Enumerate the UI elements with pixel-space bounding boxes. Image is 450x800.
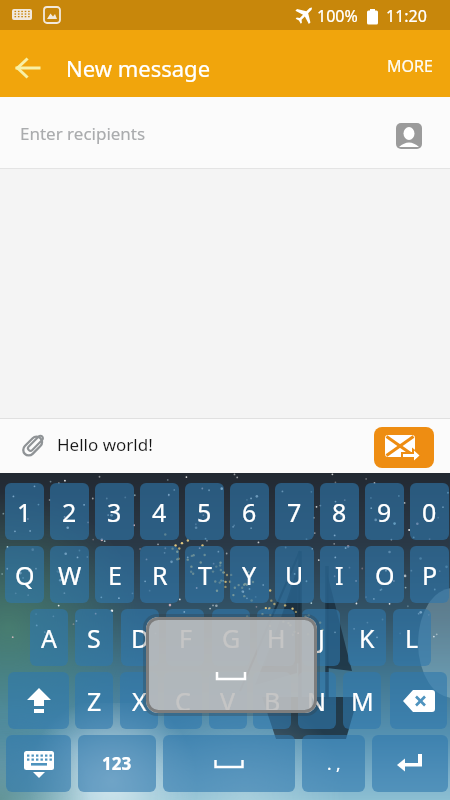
button[interactable]	[396, 123, 422, 149]
staticText: . ,	[327, 752, 341, 775]
button[interactable]: T	[185, 546, 224, 603]
button[interactable]: B	[253, 672, 291, 729]
staticText: 11:20	[386, 5, 427, 27]
button[interactable]: U	[275, 546, 314, 603]
button[interactable]: W	[50, 546, 89, 603]
staticText: G	[222, 621, 241, 655]
button[interactable]: 8	[320, 483, 359, 540]
button[interactable]: F	[166, 609, 204, 666]
staticText: 8	[332, 495, 347, 529]
button[interactable]: 9	[365, 483, 404, 540]
button[interactable]: 123	[78, 735, 156, 792]
staticText: Y	[242, 558, 257, 592]
button[interactable]: I	[320, 546, 359, 603]
staticText: M	[351, 684, 374, 718]
button[interactable]: C	[164, 672, 202, 729]
button[interactable]: MORE	[378, 51, 442, 81]
staticText: L	[405, 621, 419, 655]
staticText: J	[318, 621, 325, 655]
staticText: X	[132, 684, 147, 718]
button[interactable]: 6	[230, 483, 269, 540]
button[interactable]	[390, 672, 447, 729]
staticText: N	[307, 684, 327, 718]
button[interactable]: R	[140, 546, 179, 603]
staticText: R	[152, 558, 168, 592]
staticText: I	[335, 558, 344, 592]
staticText: 1	[17, 495, 32, 529]
staticText: B	[264, 684, 281, 718]
button[interactable]: 5	[185, 483, 224, 540]
staticText: 7	[287, 495, 302, 529]
staticText: Hello world!	[57, 433, 153, 456]
button[interactable]: P	[410, 546, 449, 603]
button[interactable]: Q	[5, 546, 44, 603]
staticText: P	[422, 558, 438, 592]
staticText: K	[359, 621, 375, 655]
button[interactable]: H	[257, 609, 295, 666]
staticText: 123	[102, 752, 132, 775]
button[interactable]: O	[365, 546, 404, 603]
staticText: 3	[107, 495, 122, 529]
button[interactable]: G	[212, 609, 250, 666]
button[interactable]: 7	[275, 483, 314, 540]
button[interactable]	[6, 735, 71, 792]
staticText: 6	[242, 495, 257, 529]
staticText: F	[179, 621, 192, 655]
staticText: E	[108, 558, 122, 592]
staticText: 5	[197, 495, 212, 529]
staticText: New message	[66, 53, 211, 83]
button[interactable]: L	[393, 609, 431, 666]
staticText: 0	[422, 495, 437, 529]
button[interactable]	[8, 54, 48, 82]
button[interactable]: V	[209, 672, 247, 729]
staticText: A	[41, 621, 57, 655]
staticText: MORE	[387, 55, 433, 77]
staticText: H	[267, 621, 286, 655]
button[interactable]: 2	[50, 483, 89, 540]
button[interactable]: N	[298, 672, 336, 729]
staticText: 100%	[317, 5, 358, 27]
staticText: O	[375, 558, 395, 592]
button[interactable]: . ,	[302, 735, 365, 792]
button[interactable]: E	[95, 546, 134, 603]
staticText: Q	[15, 558, 35, 592]
staticText: Z	[87, 684, 102, 718]
staticText: 4	[152, 495, 167, 529]
button[interactable]: M	[343, 672, 381, 729]
staticText: 2	[62, 495, 77, 529]
button[interactable]	[163, 735, 295, 792]
button[interactable]	[372, 735, 448, 792]
button[interactable]	[374, 427, 434, 468]
staticText: S	[87, 621, 101, 655]
button[interactable]: D	[121, 609, 159, 666]
button[interactable]: X	[120, 672, 158, 729]
staticText: W	[58, 558, 82, 592]
button[interactable]: Y	[230, 546, 269, 603]
button[interactable]: A	[30, 609, 68, 666]
button[interactable]: 4	[140, 483, 179, 540]
staticText: D	[131, 621, 150, 655]
button[interactable]: Enter recipients	[0, 97, 450, 169]
staticText: 9	[377, 495, 392, 529]
button[interactable]: J	[302, 609, 340, 666]
button[interactable]: Z	[75, 672, 113, 729]
button[interactable]: 0	[410, 483, 449, 540]
button[interactable]: K	[348, 609, 386, 666]
staticText: C	[175, 684, 191, 718]
button[interactable]: 1	[5, 483, 44, 540]
staticText: U	[285, 558, 304, 592]
staticText: Enter recipients	[20, 122, 146, 145]
staticText: T	[198, 558, 212, 592]
staticText: V	[220, 684, 236, 718]
button[interactable]: S	[75, 609, 113, 666]
button[interactable]	[8, 672, 69, 729]
button[interactable]: 3	[95, 483, 134, 540]
